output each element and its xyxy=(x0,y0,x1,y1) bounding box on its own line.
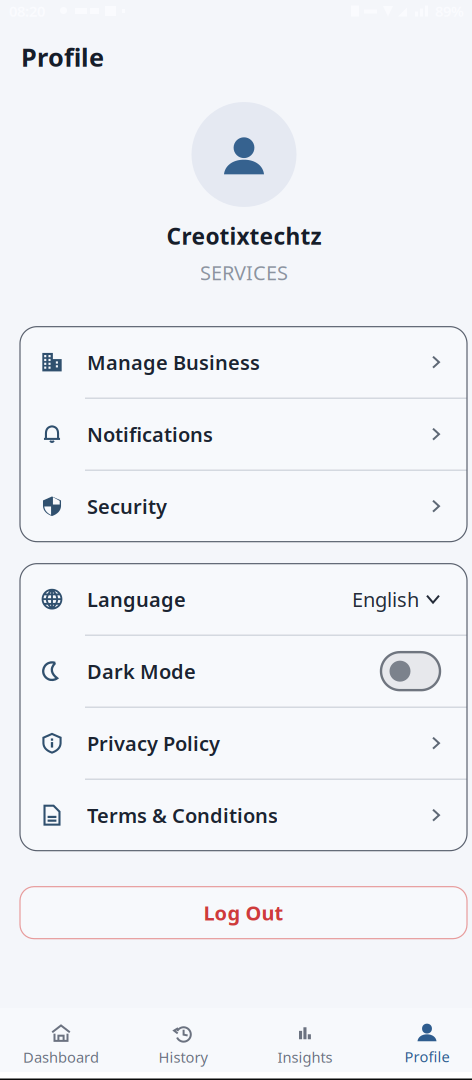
staticText: Dark Mode xyxy=(87,658,196,684)
staticText: Creotixtechtz xyxy=(166,221,321,251)
button[interactable]: Notifications xyxy=(20,399,467,470)
staticText: Security xyxy=(87,493,167,519)
staticText: Terms & Conditions xyxy=(87,802,278,828)
button[interactable]: Language xyxy=(20,564,467,635)
button[interactable]: Dashboard xyxy=(0,1023,122,1067)
button[interactable]: Dark Mode xyxy=(20,636,467,707)
button[interactable]: Profile xyxy=(366,1024,472,1066)
staticText: Insights xyxy=(277,1047,332,1067)
staticText: Notifications xyxy=(87,421,213,447)
staticText: Profile xyxy=(21,40,104,74)
button[interactable]: Manage Business xyxy=(20,327,467,398)
staticText: Profile xyxy=(404,1047,449,1066)
staticText: Privacy Policy xyxy=(87,730,220,756)
button[interactable]: Log Out xyxy=(20,887,467,939)
button[interactable]: Security xyxy=(20,471,467,542)
staticText: History xyxy=(158,1047,207,1067)
button[interactable]: Terms & Conditions xyxy=(20,780,467,851)
staticText: English xyxy=(352,586,419,612)
staticText: SERVICES xyxy=(200,259,288,286)
staticText: Dashboard xyxy=(23,1047,99,1067)
button[interactable]: Insights xyxy=(244,1023,366,1067)
button[interactable]: History xyxy=(122,1023,244,1067)
button[interactable]: Privacy Policy xyxy=(20,708,467,779)
staticText: Language xyxy=(87,586,186,612)
button[interactable]: Dark Mode toggle xyxy=(381,652,440,690)
staticText: Manage Business xyxy=(87,349,260,375)
staticText: Log Out xyxy=(203,899,283,926)
